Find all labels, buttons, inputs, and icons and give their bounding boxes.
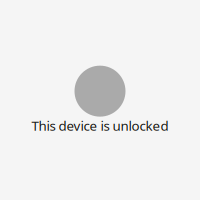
staticText: This device is unlocked: [31, 117, 168, 134]
